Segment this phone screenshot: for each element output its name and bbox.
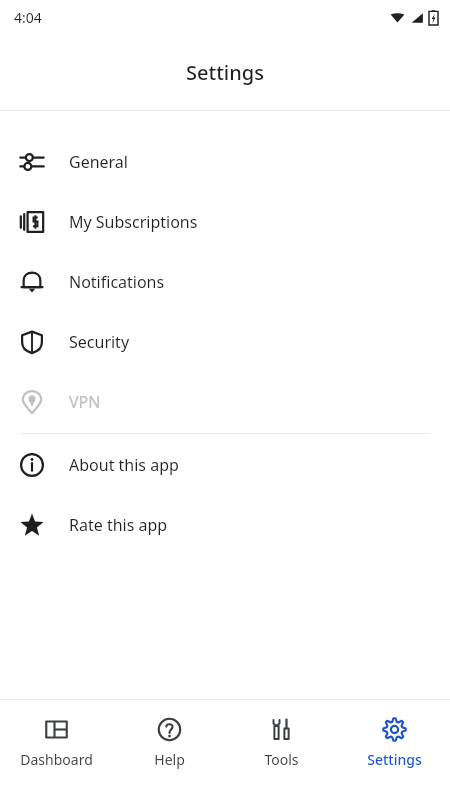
staticText: Settings <box>367 750 422 769</box>
staticText: General <box>69 151 128 173</box>
staticText: Settings <box>186 59 264 86</box>
staticText: Security <box>69 331 130 353</box>
staticText: Dashboard <box>20 750 93 769</box>
button[interactable]: VPN <box>0 372 450 432</box>
staticText: Notifications <box>69 271 165 293</box>
staticText: VPN <box>69 391 101 413</box>
staticText: My Subscriptions <box>69 211 198 233</box>
button[interactable]: Tools <box>229 700 333 769</box>
button[interactable]: About this app <box>0 435 450 495</box>
staticText: 4:04 <box>14 8 42 27</box>
button[interactable]: Dashboard <box>4 700 108 769</box>
button[interactable]: Notifications <box>0 252 450 312</box>
button[interactable]: Security <box>0 312 450 372</box>
button[interactable]: Rate this app <box>0 495 450 555</box>
staticText: Help <box>154 750 185 769</box>
staticText: Rate this app <box>69 514 168 536</box>
button[interactable]: My Subscriptions <box>0 192 450 252</box>
staticText: Tools <box>264 750 299 769</box>
button[interactable]: General <box>0 132 450 192</box>
button[interactable]: Settings <box>342 700 446 769</box>
button[interactable]: Help <box>117 700 221 769</box>
staticText: About this app <box>69 454 179 476</box>
